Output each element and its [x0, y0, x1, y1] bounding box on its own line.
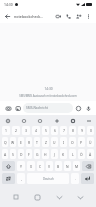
button[interactable]: Video call — [53, 11, 63, 21]
button[interactable]: 0 — [87, 126, 94, 135]
button[interactable]: 4 — [32, 126, 40, 135]
staticText: SMS-Nachricht — [26, 106, 48, 110]
staticText: V — [48, 164, 51, 169]
button[interactable]: U — [51, 137, 58, 147]
button[interactable]: Call — [63, 11, 73, 21]
button[interactable]: M — [73, 161, 80, 171]
staticText: Ä — [89, 152, 92, 157]
staticText: 14:30 — [44, 87, 53, 91]
staticText: Z — [45, 140, 47, 145]
button[interactable]: Camera — [3, 103, 13, 113]
button[interactable]: V — [46, 161, 53, 171]
button[interactable]: Emoji — [73, 103, 83, 113]
button[interactable]: GIF — [20, 117, 27, 124]
button[interactable]: N — [64, 161, 71, 171]
button[interactable]: 1 — [2, 126, 10, 135]
button[interactable]: Recents — [10, 191, 22, 203]
button[interactable]: Y — [17, 161, 25, 171]
staticText: Ö — [80, 152, 83, 157]
button[interactable]: G — [34, 149, 40, 159]
button[interactable]: J — [51, 149, 58, 159]
button[interactable]: 2 — [12, 126, 20, 135]
staticText: D — [20, 152, 23, 157]
button[interactable]: 7 — [60, 126, 67, 135]
staticText: Q — [4, 140, 7, 145]
staticText: , — [21, 176, 22, 181]
staticText: Deutsch — [43, 177, 54, 181]
button[interactable]: H — [42, 149, 49, 159]
button[interactable]: Deutsch — [27, 173, 69, 184]
staticText: 9 — [81, 128, 83, 133]
button[interactable]: More options — [83, 11, 93, 21]
staticText: P — [80, 140, 83, 145]
button[interactable]: B — [55, 161, 62, 171]
button[interactable]: 6 — [51, 126, 58, 135]
staticText: . — [75, 176, 76, 181]
staticText: M — [75, 164, 79, 169]
button[interactable]: Back — [3, 12, 12, 21]
button[interactable]: W — [10, 137, 16, 147]
staticText: O — [71, 140, 74, 145]
button[interactable]: Google — [4, 117, 11, 124]
button[interactable]: 3 — [22, 126, 30, 135]
staticText: 14:30 — [4, 2, 13, 7]
button[interactable]: I — [60, 137, 67, 147]
staticText: 3 — [25, 128, 27, 133]
button[interactable]: Collapse — [85, 117, 92, 124]
button[interactable]: Voice message — [83, 103, 93, 113]
staticText: R — [28, 140, 31, 145]
button[interactable]: K — [60, 149, 67, 159]
button[interactable]: notebookcheck… — [14, 14, 53, 19]
button[interactable]: Translate — [53, 117, 60, 124]
button[interactable]: E — [18, 137, 24, 147]
button[interactable]: Ö — [78, 149, 85, 159]
button[interactable]: 5 — [42, 126, 49, 135]
button[interactable]: Back — [53, 191, 65, 203]
button[interactable]: Shift — [2, 161, 15, 171]
button[interactable]: R — [26, 137, 32, 147]
staticText: I — [63, 140, 65, 145]
staticText: SMS/MMS Austausch mit notebookcheck.com — [19, 94, 77, 98]
button[interactable]: Enter — [81, 173, 94, 184]
staticText: L — [72, 152, 74, 157]
button[interactable]: D — [18, 149, 24, 159]
button[interactable]: , — [17, 173, 25, 184]
button[interactable]: Backspace — [82, 161, 94, 171]
button[interactable]: Stickers — [36, 117, 43, 124]
staticText: 5 — [45, 128, 47, 133]
button[interactable]: S — [10, 149, 16, 159]
button[interactable]: 9 — [78, 126, 85, 135]
staticText: N — [66, 164, 69, 169]
button[interactable]: O — [69, 137, 76, 147]
staticText: J — [54, 152, 55, 157]
staticText: E — [20, 140, 22, 145]
staticText: 8 — [72, 128, 74, 133]
button[interactable]: X — [27, 161, 35, 171]
staticText: S — [12, 152, 14, 157]
button[interactable]: Ä — [87, 149, 94, 159]
button[interactable]: Hide keyboard — [74, 191, 86, 203]
staticText: 4 — [35, 128, 37, 133]
button[interactable]: T — [34, 137, 40, 147]
staticText: K — [62, 152, 65, 157]
button[interactable]: Ü — [87, 137, 94, 147]
button[interactable]: Add person — [73, 11, 83, 21]
staticText: U — [53, 140, 56, 145]
button[interactable]: Gallery — [13, 103, 23, 113]
button[interactable]: Z — [42, 137, 49, 147]
staticText: Y — [20, 164, 22, 169]
button[interactable]: C — [37, 161, 44, 171]
button[interactable]: Q — [2, 137, 8, 147]
button[interactable]: 8 — [69, 126, 76, 135]
staticText: A — [4, 152, 7, 157]
button[interactable]: L — [69, 149, 76, 159]
staticText: H — [44, 152, 47, 157]
button[interactable]: Settings — [69, 117, 76, 124]
button[interactable]: SMS-Nachricht — [23, 103, 73, 113]
button[interactable]: A — [2, 149, 8, 159]
button[interactable]: P — [78, 137, 85, 147]
button[interactable]: F — [26, 149, 32, 159]
button[interactable]: Home — [31, 191, 43, 203]
button[interactable]: Symbols — [2, 173, 15, 184]
